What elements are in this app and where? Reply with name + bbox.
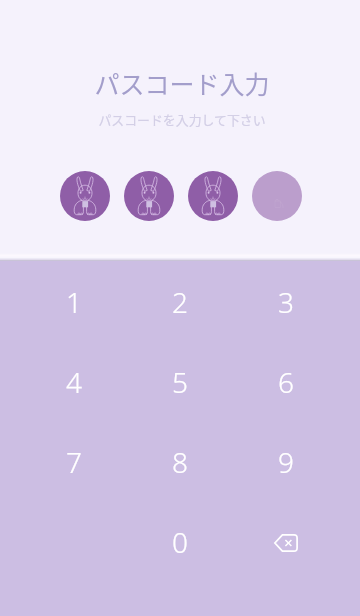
button[interactable]: 2: [127, 262, 233, 342]
staticText: 4: [66, 363, 82, 401]
button[interactable]: 1: [21, 262, 127, 342]
button[interactable]: 6: [233, 342, 339, 422]
staticText: 5: [172, 363, 188, 401]
staticText: 1: [66, 283, 82, 321]
staticText: 3: [278, 283, 294, 321]
button[interactable]: 8: [127, 422, 233, 502]
button[interactable]: 7: [21, 422, 127, 502]
staticText: 7: [66, 443, 82, 481]
staticText: パスコード入力: [94, 65, 270, 101]
staticText: 8: [172, 443, 188, 481]
button[interactable]: 3: [233, 262, 339, 342]
staticText: 6: [278, 363, 294, 401]
staticText: 9: [278, 443, 294, 481]
button[interactable]: 0: [127, 502, 233, 582]
button[interactable]: 4: [21, 342, 127, 422]
staticText: 0: [172, 523, 188, 561]
staticText: パスコードを入力して下さい: [98, 110, 266, 129]
other: Delete: [274, 534, 298, 552]
button[interactable]: 9: [233, 422, 339, 502]
staticText: 2: [172, 283, 188, 321]
button[interactable]: 5: [127, 342, 233, 422]
button[interactable]: Delete: [233, 502, 339, 582]
